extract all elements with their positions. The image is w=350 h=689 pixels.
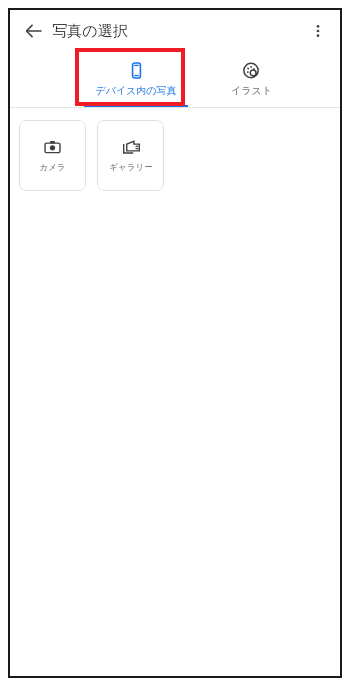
staticText: ギャラリー bbox=[109, 162, 153, 173]
button[interactable]: More options bbox=[300, 13, 336, 49]
staticText: カメラ bbox=[39, 162, 66, 173]
staticText: デバイス内の写真 bbox=[95, 84, 177, 97]
staticText: イラスト bbox=[231, 84, 272, 97]
staticText: 写真の選択 bbox=[52, 22, 128, 41]
button[interactable]: イラスト bbox=[196, 54, 306, 108]
button[interactable]: カメラ bbox=[19, 120, 86, 191]
button[interactable]: ギャラリー bbox=[97, 120, 164, 191]
button[interactable]: デバイス内の写真 bbox=[76, 54, 196, 108]
button[interactable]: Back bbox=[16, 13, 52, 49]
